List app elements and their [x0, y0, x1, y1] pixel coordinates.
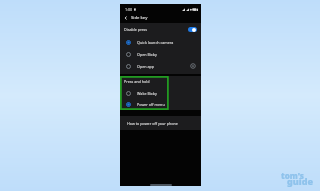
staticText: Disable press [124, 27, 148, 32]
button[interactable]: Open app [120, 60, 201, 72]
button[interactable]: Open Bixby [120, 48, 201, 60]
staticText: Power off menu [137, 102, 165, 107]
button[interactable]: Disable press [120, 23, 201, 36]
staticText: guide [287, 175, 314, 187]
staticText: Open app [137, 64, 155, 69]
button[interactable]: Back [120, 12, 201, 23]
staticText: 1:00 [125, 7, 133, 12]
staticText: Press and hold [124, 79, 150, 84]
button[interactable]: Wake Bixby [120, 87, 201, 99]
staticText: Quick launch camera [137, 40, 174, 45]
staticText: Side key [131, 15, 148, 21]
other: Back [123, 15, 129, 21]
button[interactable]: Quick launch camera [120, 36, 201, 48]
staticText: Open Bixby [137, 52, 157, 57]
other: Settings [190, 63, 196, 69]
staticText: How to power off your phone [127, 121, 178, 126]
staticText: tom's [281, 170, 304, 181]
staticText: Wake Bixby [137, 91, 157, 96]
button[interactable]: How to power off your phone [120, 116, 201, 130]
button[interactable]: Power off menu [120, 99, 201, 110]
